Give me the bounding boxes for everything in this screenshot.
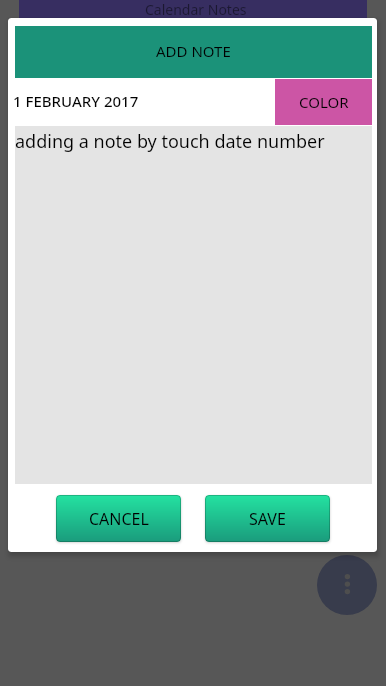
button[interactable]: CANCEL (56, 495, 181, 542)
staticText: CANCEL (89, 508, 149, 530)
staticText: COLOR (299, 92, 349, 112)
staticText: adding a note by touch date number (15, 129, 325, 154)
button[interactable]: COLOR (275, 79, 372, 125)
button[interactable]: adding a note by touch date number (15, 126, 372, 484)
button[interactable]: 1 FEBRUARY 2017 (15, 79, 275, 125)
button[interactable]: SAVE (205, 495, 330, 542)
button[interactable]: ADD NOTE (15, 26, 372, 78)
staticText: Calendar Notes (145, 0, 247, 19)
staticText: 1 FEBRUARY 2017 (13, 91, 139, 111)
button[interactable]: More options (317, 555, 377, 615)
staticText: SAVE (249, 508, 286, 530)
staticText: ADD NOTE (156, 41, 231, 61)
